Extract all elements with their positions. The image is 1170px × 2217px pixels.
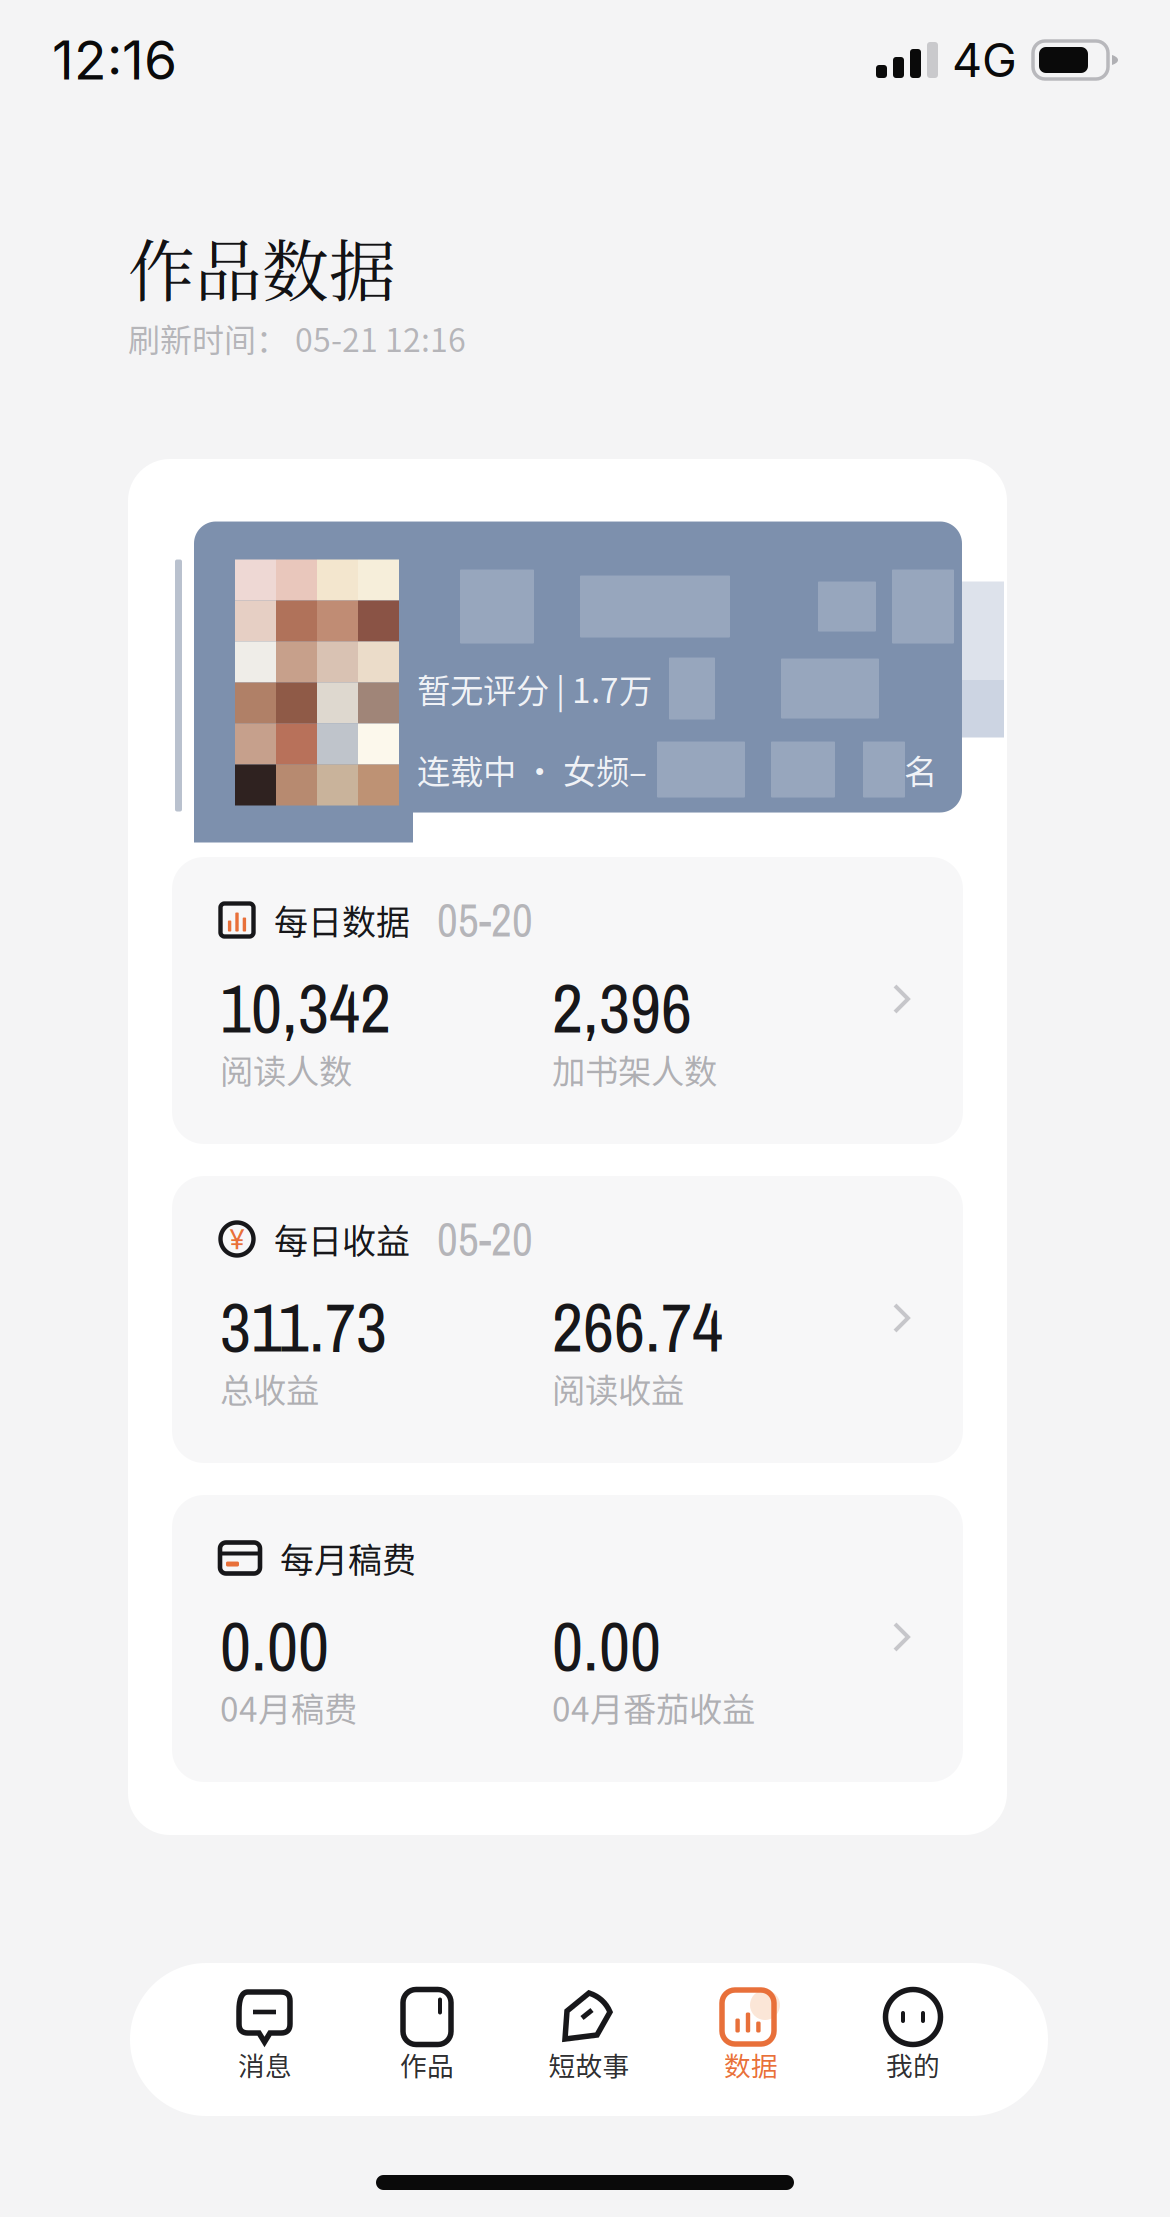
staticText: 暂无评分 | 1.7万 bbox=[417, 664, 652, 713]
staticText: 311.73 bbox=[220, 1281, 387, 1373]
button[interactable]: 每日数据 bbox=[172, 857, 963, 1144]
staticText: 每月稿费 bbox=[280, 1533, 416, 1583]
staticText: 数据 bbox=[724, 2045, 778, 2084]
staticText: 阅读人数 bbox=[220, 1045, 352, 1093]
staticText: 总收益 bbox=[220, 1364, 319, 1412]
button[interactable]: 作品 bbox=[346, 1963, 508, 2116]
staticText: 作品 bbox=[400, 2045, 454, 2084]
button[interactable]: 我的 bbox=[832, 1963, 994, 2116]
staticText: 名 bbox=[904, 745, 937, 794]
button[interactable]: ¥ bbox=[172, 1176, 963, 1463]
button[interactable]: 消息 bbox=[184, 1963, 346, 2116]
staticText: ¥ bbox=[229, 1222, 244, 1256]
staticText: 10,342 bbox=[220, 962, 391, 1054]
button[interactable]: 每月稿费 bbox=[172, 1495, 963, 1782]
staticText: 266.74 bbox=[552, 1281, 723, 1373]
staticText: 刷新时间： 05-21 12:16 bbox=[128, 315, 466, 361]
staticText: 每日数据 bbox=[274, 895, 410, 945]
staticText: 0.00 bbox=[220, 1600, 329, 1692]
staticText: 12:16 bbox=[52, 28, 177, 92]
button[interactable]: 数据 bbox=[670, 1963, 832, 2116]
staticText: 加书架人数 bbox=[552, 1045, 717, 1093]
staticText: 04月稿费 bbox=[220, 1683, 357, 1731]
staticText: 我的 bbox=[886, 2045, 940, 2084]
staticText: 04月番茄收益 bbox=[552, 1683, 755, 1731]
staticText: 4G bbox=[952, 32, 1017, 88]
staticText: 阅读收益 bbox=[552, 1364, 684, 1412]
staticText: 连载中 · 女频– bbox=[417, 745, 647, 794]
button[interactable]: 短故事 bbox=[508, 1963, 670, 2116]
staticText: 作品数据 bbox=[128, 219, 396, 315]
staticText: 短故事 bbox=[548, 2045, 629, 2084]
staticText: 05-20 bbox=[437, 1208, 533, 1270]
staticText: 每日收益 bbox=[274, 1214, 410, 1264]
staticText: 2,396 bbox=[552, 962, 692, 1054]
staticText: 05-20 bbox=[437, 889, 533, 951]
staticText: 消息 bbox=[238, 2045, 292, 2084]
staticText: 0.00 bbox=[552, 1600, 661, 1692]
